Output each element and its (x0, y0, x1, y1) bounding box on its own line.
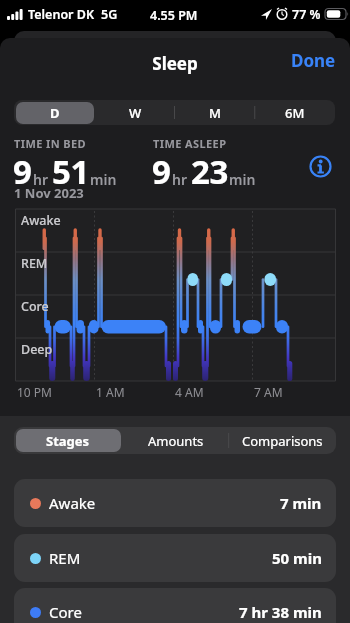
staticText: Deep (21, 341, 53, 358)
staticText: Comparisons (242, 432, 323, 450)
staticText: 4.55 PM (150, 7, 198, 24)
staticText: 5G (101, 6, 118, 23)
staticText: hr (172, 170, 188, 189)
button[interactable]: Core (14, 588, 336, 623)
staticText: W (129, 104, 142, 122)
button[interactable]: REM (14, 534, 336, 582)
staticText: Sleep (0, 52, 350, 75)
staticText: min (229, 170, 256, 189)
staticText: 1 Nov 2023 (14, 184, 84, 202)
staticText: REM (49, 548, 81, 568)
staticText: M (209, 104, 221, 122)
button[interactable] (309, 155, 332, 178)
staticText: hr (33, 170, 49, 189)
staticText: TIME ASLEEP (153, 136, 227, 151)
button[interactable]: Awake (14, 479, 336, 527)
staticText: 9 (152, 149, 171, 194)
staticText: 50 min (272, 548, 322, 568)
staticText: 6M (285, 104, 305, 122)
staticText: REM (21, 255, 48, 272)
button[interactable]: M (175, 100, 255, 125)
staticText: Stages (46, 432, 90, 450)
staticText: 9 (13, 149, 32, 194)
staticText: 4 AM (175, 384, 204, 400)
staticText: 23 (191, 149, 228, 194)
staticText: 51 (52, 149, 89, 194)
staticText: Awake (21, 212, 61, 229)
staticText: 7 hr 38 min (239, 602, 322, 622)
staticText: Awake (49, 493, 96, 513)
staticText: 77 % (292, 6, 321, 23)
staticText: D (50, 104, 60, 122)
staticText: Done (291, 49, 336, 72)
staticText: 7 AM (254, 384, 283, 400)
button[interactable]: Done (283, 44, 343, 76)
staticText: Telenor DK (28, 6, 95, 23)
staticText: Core (49, 602, 82, 622)
staticText: 7 min (280, 493, 322, 513)
button[interactable]: Comparisons (229, 427, 336, 454)
button[interactable]: 6M (255, 100, 335, 125)
staticText: TIME IN BED (14, 136, 87, 151)
staticText: Core (21, 298, 49, 315)
button[interactable]: D (14, 100, 95, 125)
button[interactable]: Stages (14, 427, 122, 454)
staticText: Amounts (148, 432, 204, 450)
button[interactable]: Amounts (122, 427, 229, 454)
staticText: 10 PM (17, 384, 52, 400)
staticText: min (90, 170, 117, 189)
staticText: 1 AM (96, 384, 125, 400)
button[interactable]: W (95, 100, 175, 125)
